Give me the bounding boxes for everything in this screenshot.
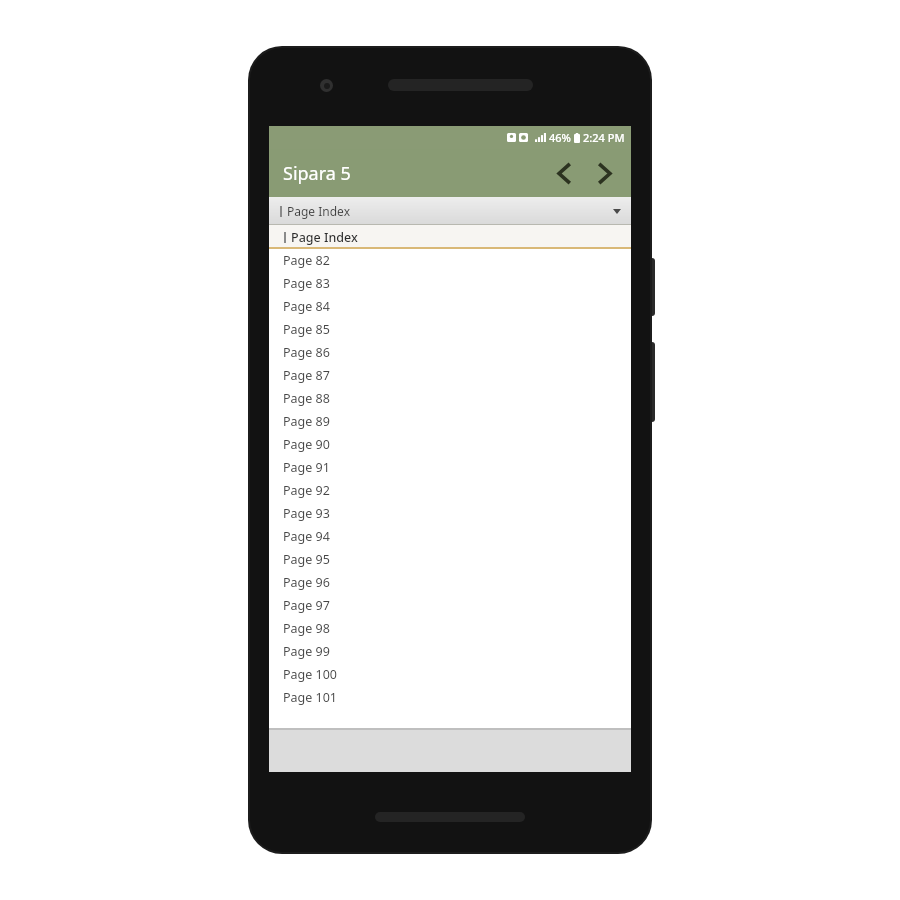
staticText: Page 93: [283, 505, 330, 522]
staticText: Page Index: [287, 203, 351, 219]
staticText: Page 95: [283, 551, 330, 568]
staticText: Page 97: [283, 597, 330, 614]
button[interactable]: Next page: [591, 159, 619, 187]
button[interactable]: Page 96: [269, 571, 631, 594]
staticText: Page 96: [283, 574, 330, 591]
staticText: Page 88: [283, 390, 330, 407]
staticText: Page 98: [283, 620, 330, 637]
button[interactable]: Page 93: [269, 502, 631, 525]
staticText: Page 86: [283, 344, 330, 361]
button[interactable]: Page Index: [269, 225, 631, 249]
button[interactable]: Page 95: [269, 548, 631, 571]
staticText: Page 89: [283, 413, 330, 430]
staticText: Sipara 5: [283, 161, 351, 186]
button[interactable]: Page 87: [269, 364, 631, 387]
staticText: Page 85: [283, 321, 330, 338]
staticText: Page 100: [283, 666, 338, 683]
staticText: Page 90: [283, 436, 330, 453]
button[interactable]: Page 101: [269, 686, 631, 709]
button[interactable]: Page 94: [269, 525, 631, 548]
staticText: Page Index: [291, 229, 358, 246]
button[interactable]: Page 86: [269, 341, 631, 364]
button[interactable]: Page 83: [269, 272, 631, 295]
button[interactable]: Page 88: [269, 387, 631, 410]
button[interactable]: Previous page: [549, 159, 577, 187]
staticText: Page 82: [283, 252, 330, 269]
button[interactable]: Page 98: [269, 617, 631, 640]
button[interactable]: Page 92: [269, 479, 631, 502]
staticText: Page 101: [283, 689, 338, 706]
button[interactable]: Page 91: [269, 456, 631, 479]
staticText: Page 94: [283, 528, 330, 545]
button[interactable]: Page 90: [269, 433, 631, 456]
button[interactable]: Page 100: [269, 663, 631, 686]
button[interactable]: Page 85: [269, 318, 631, 341]
button[interactable]: Page 84: [269, 295, 631, 318]
button[interactable]: Page 97: [269, 594, 631, 617]
staticText: Page 84: [283, 298, 330, 315]
staticText: 46%: [549, 130, 571, 145]
button[interactable]: Page Index: [269, 197, 631, 225]
button[interactable]: Page 89: [269, 410, 631, 433]
staticText: 2:24 PM: [583, 130, 625, 145]
staticText: Page 83: [283, 275, 330, 292]
staticText: Page 92: [283, 482, 330, 499]
button[interactable]: Page 82: [269, 249, 631, 272]
staticText: Page 87: [283, 367, 330, 384]
staticText: Page 99: [283, 643, 330, 660]
staticText: Page 91: [283, 459, 330, 476]
button[interactable]: Page 99: [269, 640, 631, 663]
